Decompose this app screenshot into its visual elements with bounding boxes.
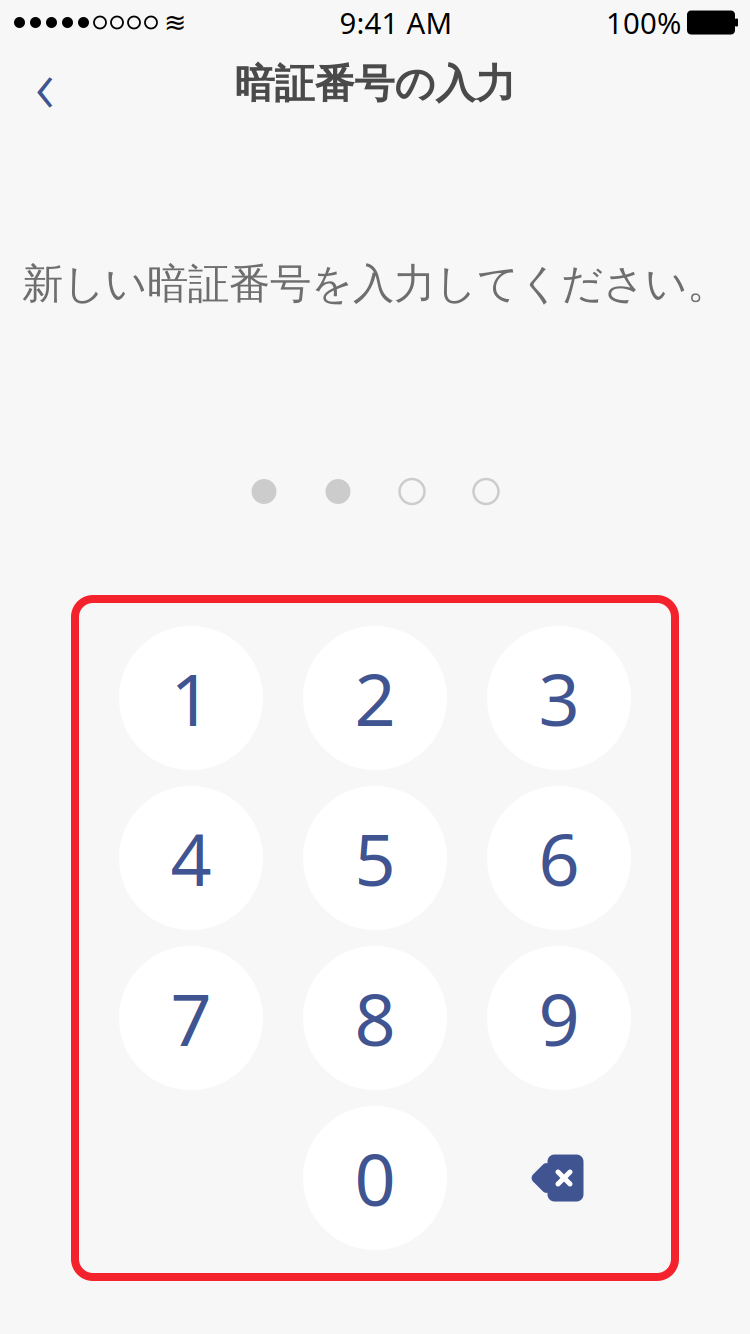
staticText: 7 [170,970,211,1066]
button[interactable]: 4 [99,778,283,938]
button[interactable]: 戻る [10,51,80,117]
staticText: 9 [538,970,579,1066]
staticText: 100% [606,3,681,42]
button[interactable]: 5 [283,778,467,938]
staticText: 9:41 AM [339,3,452,42]
staticText: 2 [354,650,395,746]
button[interactable]: 6 [467,778,651,938]
staticText: 3 [538,650,579,746]
staticText: 暗証番号の入力 [234,59,515,108]
button[interactable]: 8 [283,938,467,1098]
staticText: 5 [354,810,395,906]
staticText: 6 [538,810,579,906]
button[interactable]: 7 [99,938,283,1098]
staticText: 4 [170,810,211,906]
button[interactable]: 0 [283,1098,467,1258]
button[interactable]: 1 [99,618,283,778]
staticText: 1 [170,650,211,746]
button[interactable]: 9 [467,938,651,1098]
staticText: 0 [354,1130,395,1226]
button[interactable]: 削除 [467,1098,651,1258]
staticText: 新しい暗証番号を入力してください。 [22,259,728,309]
button[interactable]: 3 [467,618,651,778]
staticText: ≋ [164,7,186,38]
staticText: 8 [354,970,395,1066]
button[interactable]: 2 [283,618,467,778]
staticText: ‹ [35,34,55,134]
